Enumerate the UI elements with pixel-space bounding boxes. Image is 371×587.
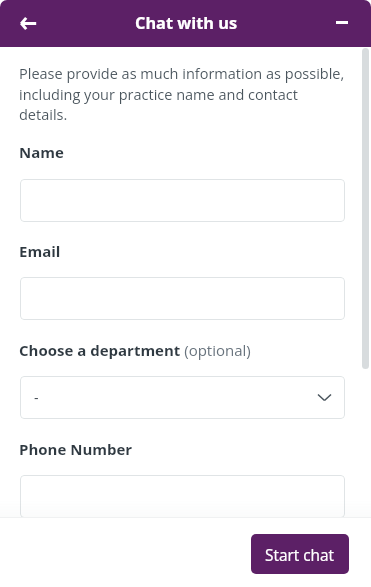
staticText: Name — [19, 142, 64, 162]
staticText: Phone Number — [19, 439, 133, 459]
button[interactable]: - — [20, 376, 345, 419]
staticText: Start chat — [265, 545, 335, 566]
staticText: - — [34, 388, 39, 407]
button[interactable] — [20, 475, 345, 517]
staticText: Chat with us — [135, 12, 237, 34]
button[interactable]: Back — [10, 5, 46, 41]
staticText: Choose a department (optional) — [19, 340, 251, 360]
button[interactable]: Start chat — [251, 534, 349, 574]
staticText: Email — [19, 241, 61, 261]
staticText: Please provide as much information as po… — [19, 64, 348, 124]
button[interactable] — [20, 277, 345, 320]
button[interactable] — [20, 179, 345, 222]
button[interactable]: Minimize — [324, 4, 361, 41]
